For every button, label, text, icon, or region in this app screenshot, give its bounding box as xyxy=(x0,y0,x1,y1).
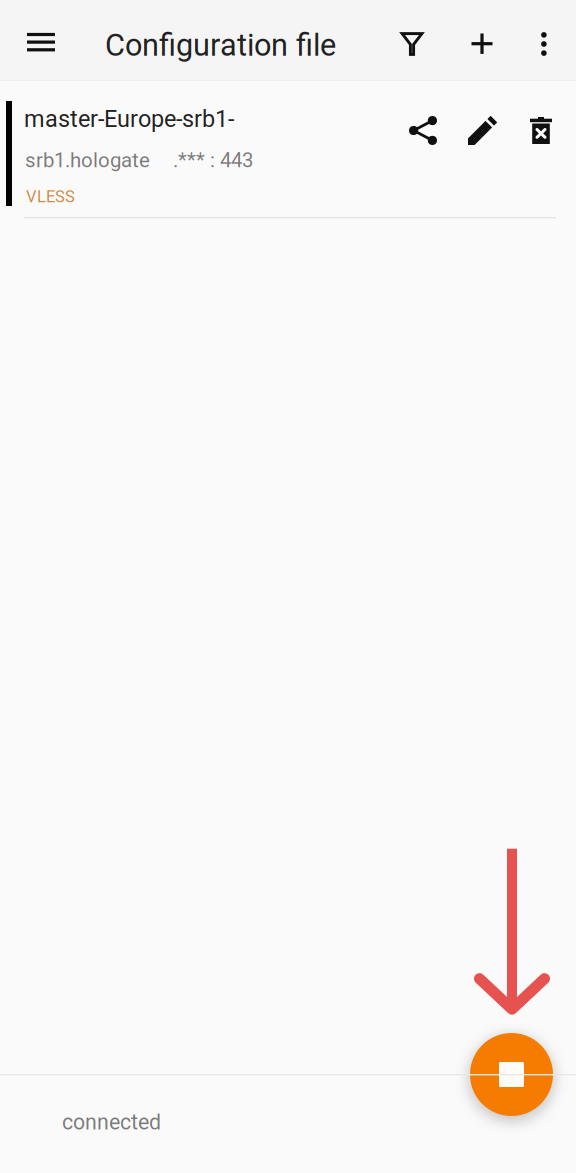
button[interactable]: master-Europe-srb1- xyxy=(0,82,576,219)
staticText: .*** : 443 xyxy=(173,148,253,172)
staticText: master-Europe-srb1- xyxy=(24,105,234,133)
button[interactable]: Stop connection xyxy=(470,1033,553,1116)
button[interactable]: Open navigation drawer xyxy=(16,17,66,67)
button[interactable]: Delete configuration xyxy=(519,108,563,152)
staticText: VLESS xyxy=(26,187,75,206)
staticText: Configuration file xyxy=(105,27,336,63)
button[interactable]: Add configuration xyxy=(458,20,506,68)
button[interactable]: Filter configurations xyxy=(388,20,436,68)
staticText: connected xyxy=(62,1110,161,1135)
button[interactable]: More options xyxy=(524,20,564,68)
button[interactable]: Share configuration xyxy=(401,108,445,152)
staticText: srb1.hologate xyxy=(25,148,150,172)
button[interactable]: Edit configuration xyxy=(459,109,503,153)
